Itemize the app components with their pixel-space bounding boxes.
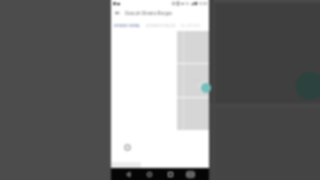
button[interactable]: Recents: [166, 170, 175, 179]
staticText: 10:08: [198, 1, 208, 6]
staticText: 5G: [185, 2, 190, 6]
button[interactable]: Add: [201, 83, 211, 93]
button[interactable]: Play: [124, 144, 131, 151]
staticText: Deocah Silveira Borges: [125, 10, 173, 16]
button[interactable]: ADMINISTRAÇÃO: [146, 23, 176, 27]
button[interactable]: Navigate up: [113, 8, 122, 17]
button[interactable]: Split screen: [186, 170, 195, 179]
button[interactable]: ESTADO GERAL: [114, 23, 141, 27]
button[interactable]: Home: [145, 170, 154, 179]
button[interactable]: Back: [124, 170, 133, 179]
button[interactable]: ALERTAS: [181, 23, 201, 27]
